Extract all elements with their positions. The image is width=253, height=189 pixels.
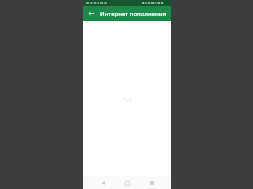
button[interactable]: Back <box>98 178 108 188</box>
button[interactable]: Recent apps <box>147 178 157 188</box>
button[interactable]: Back <box>86 8 97 19</box>
button[interactable]: Home <box>122 178 132 188</box>
staticText: Интернет пополнения <box>100 10 167 18</box>
